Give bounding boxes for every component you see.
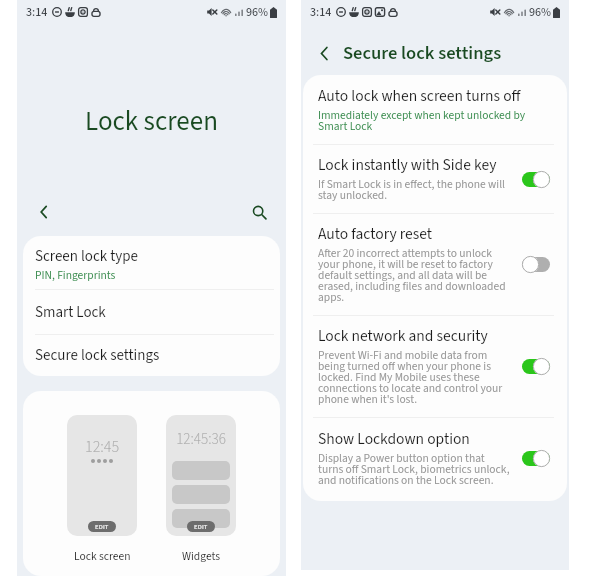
- button[interactable]: Auto factory reset: [303, 214, 567, 315]
- staticText: 96%: [529, 4, 552, 21]
- button[interactable]: EDIT: [88, 521, 116, 532]
- staticText: 12:45:36: [166, 429, 236, 450]
- staticText: EDIT: [194, 522, 208, 531]
- button[interactable]: Toggle off: [522, 256, 550, 273]
- staticText: Lock instantly with Side key: [318, 154, 497, 176]
- button[interactable]: 12:45: [67, 415, 137, 564]
- button[interactable]: Auto lock when screen turns off: [303, 75, 567, 144]
- staticText: Lock screen: [17, 102, 286, 140]
- button[interactable]: Navigate up: [311, 40, 337, 66]
- staticText: 3:14: [26, 4, 48, 21]
- button[interactable]: Navigate up: [29, 197, 59, 227]
- staticText: EDIT: [95, 522, 109, 531]
- button[interactable]: Toggle on: [522, 358, 550, 375]
- button[interactable]: Lock instantly with Side key: [303, 145, 567, 213]
- button[interactable]: Search: [244, 197, 274, 227]
- button[interactable]: Lock network and security: [303, 316, 567, 417]
- button[interactable]: Screen lock type: [23, 236, 280, 289]
- staticText: Widgets: [182, 548, 221, 564]
- staticText: Auto lock when screen turns off: [318, 85, 521, 107]
- button[interactable]: EDIT: [187, 521, 215, 532]
- button[interactable]: Show Lockdown option: [303, 418, 567, 501]
- staticText: Show Lockdown option: [318, 428, 470, 450]
- staticText: Display a Power button option that turns…: [318, 450, 511, 489]
- staticText: 12:45: [85, 436, 120, 459]
- staticText: Secure lock settings: [343, 40, 502, 66]
- staticText: After 20 incorrect attempts to unlock yo…: [318, 245, 511, 306]
- button[interactable]: Toggle on: [522, 171, 550, 188]
- staticText: Secure lock settings: [35, 345, 160, 366]
- staticText: Lock network and security: [318, 325, 488, 347]
- button[interactable]: 12:45:36: [166, 415, 236, 564]
- staticText: Prevent Wi-Fi and mobile data from being…: [318, 347, 511, 408]
- staticText: Lock screen: [74, 548, 131, 564]
- staticText: 96%: [246, 4, 269, 21]
- button[interactable]: Secure lock settings: [23, 335, 280, 376]
- staticText: Auto factory reset: [318, 223, 432, 245]
- staticText: If Smart Lock is in effect, the phone wi…: [318, 176, 511, 204]
- staticText: Immediately except when kept unlocked by…: [318, 107, 533, 135]
- staticText: 3:14: [310, 4, 332, 21]
- staticText: Smart Lock: [35, 302, 106, 323]
- button[interactable]: Toggle on: [522, 450, 550, 467]
- staticText: PIN, Fingerprints: [35, 267, 116, 283]
- staticText: Screen lock type: [35, 246, 139, 267]
- button[interactable]: Smart Lock: [23, 290, 280, 334]
